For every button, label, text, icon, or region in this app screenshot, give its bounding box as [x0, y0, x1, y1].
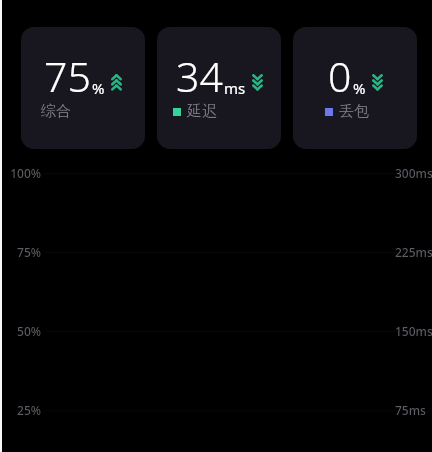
other: Trending up — [111, 74, 122, 92]
staticText: 100% — [0, 165, 41, 181]
staticText: 150ms — [395, 323, 432, 339]
other: Trending down — [252, 74, 263, 92]
staticText: 75 — [44, 48, 91, 104]
staticText: 75ms — [395, 402, 426, 418]
staticText: 225ms — [395, 244, 432, 260]
staticText: 综合 — [41, 102, 71, 121]
staticText: 75% — [0, 244, 41, 260]
staticText: 300ms — [395, 165, 432, 181]
button[interactable]: 75 — [21, 27, 145, 149]
staticText: 50% — [0, 323, 41, 339]
staticText: ms — [224, 78, 246, 98]
staticText: % — [92, 78, 105, 98]
staticText: 丢包 — [339, 102, 369, 121]
staticText: % — [353, 78, 366, 98]
button[interactable]: 34 — [157, 27, 281, 149]
staticText: 0 — [328, 48, 352, 104]
other: Trending down — [372, 74, 383, 92]
staticText: 34 — [176, 48, 223, 104]
staticText: 延迟 — [187, 102, 217, 121]
staticText: 25% — [0, 402, 41, 418]
button[interactable]: 0 — [293, 27, 417, 149]
